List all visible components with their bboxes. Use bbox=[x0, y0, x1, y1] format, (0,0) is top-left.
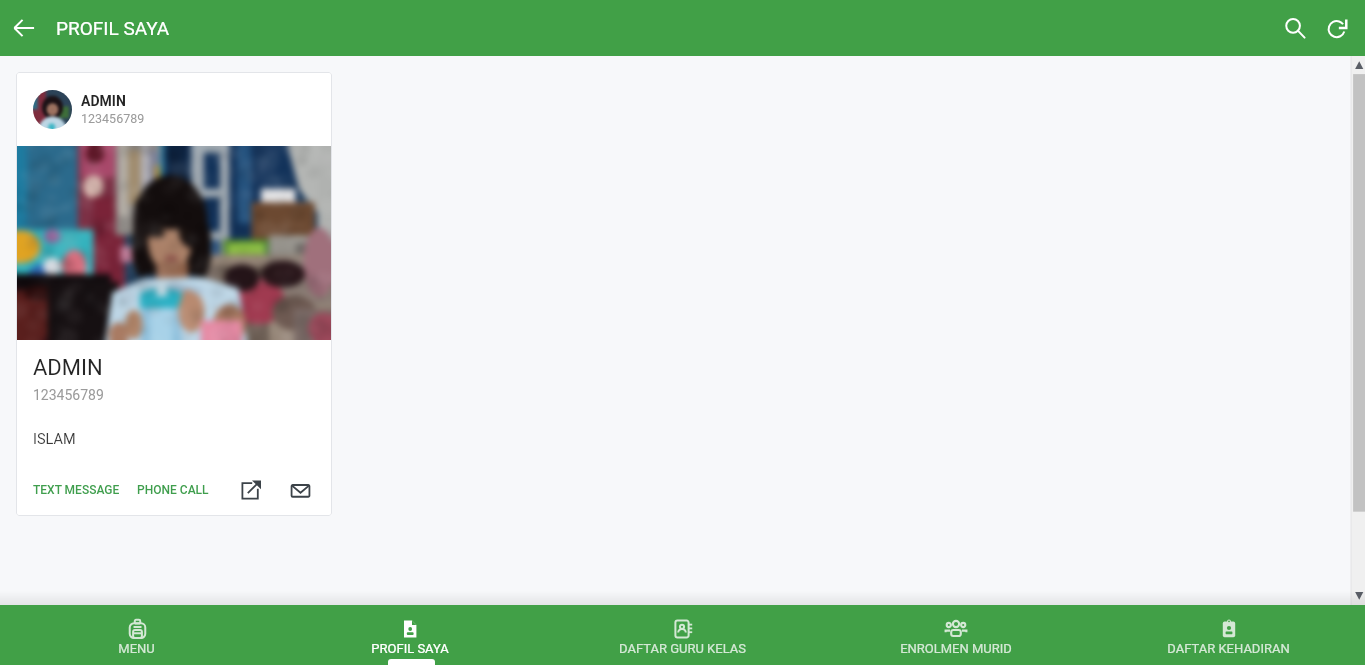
button[interactable]: Refresh bbox=[1316, 4, 1360, 52]
button[interactable]: TEXT MESSAGE bbox=[25, 477, 128, 503]
staticText: PROFIL SAYA bbox=[371, 641, 449, 656]
button[interactable]: Search bbox=[1274, 4, 1316, 52]
button[interactable]: PHONE CALL bbox=[129, 477, 217, 503]
button[interactable]: ENROLMEN MURID bbox=[819, 605, 1092, 665]
staticText: ISLAM bbox=[33, 431, 76, 448]
button[interactable]: Back bbox=[4, 8, 44, 48]
staticText: DAFTAR GURU KELAS bbox=[619, 641, 746, 656]
button[interactable]: PROFIL SAYA bbox=[273, 605, 546, 665]
staticText: DAFTAR KEHADIRAN bbox=[1167, 641, 1290, 656]
staticText: 123456789 bbox=[33, 387, 104, 403]
staticText: ENROLMEN MURID bbox=[900, 641, 1012, 656]
staticText: PHONE CALL bbox=[137, 483, 209, 497]
staticText: MENU bbox=[118, 641, 155, 656]
staticText: 123456789 bbox=[81, 111, 145, 126]
button[interactable]: DAFTAR KEHADIRAN bbox=[1092, 605, 1365, 665]
button[interactable]: Email bbox=[285, 475, 315, 505]
button[interactable]: Open link bbox=[236, 475, 266, 505]
staticText: ADMIN bbox=[33, 355, 103, 381]
staticText: ADMIN bbox=[81, 93, 126, 109]
button[interactable]: DAFTAR GURU KELAS bbox=[546, 605, 819, 665]
button[interactable]: MENU bbox=[0, 605, 273, 665]
staticText: TEXT MESSAGE bbox=[33, 483, 120, 497]
staticText: PROFIL SAYA bbox=[56, 17, 170, 39]
